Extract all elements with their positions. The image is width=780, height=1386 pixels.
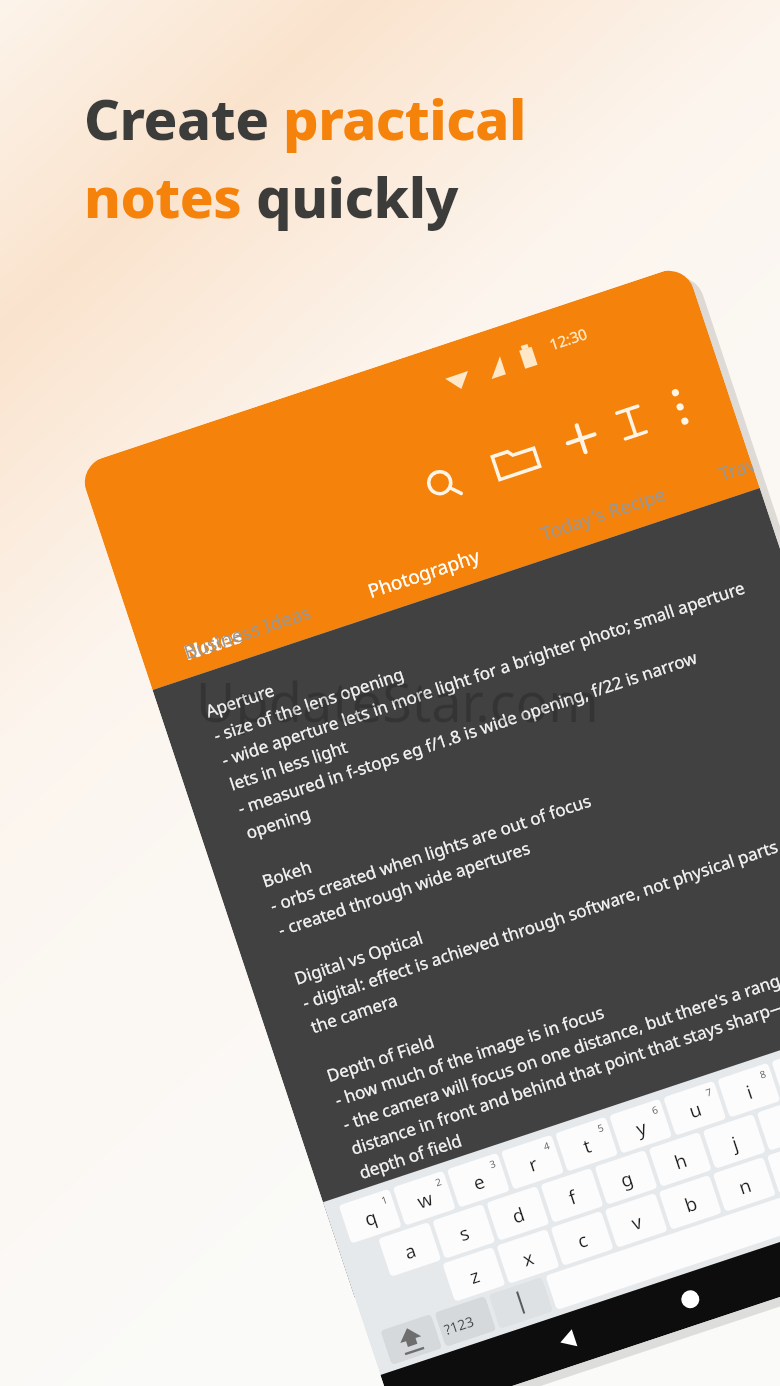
button[interactable]: Notes app preview <box>0 0 780 1386</box>
